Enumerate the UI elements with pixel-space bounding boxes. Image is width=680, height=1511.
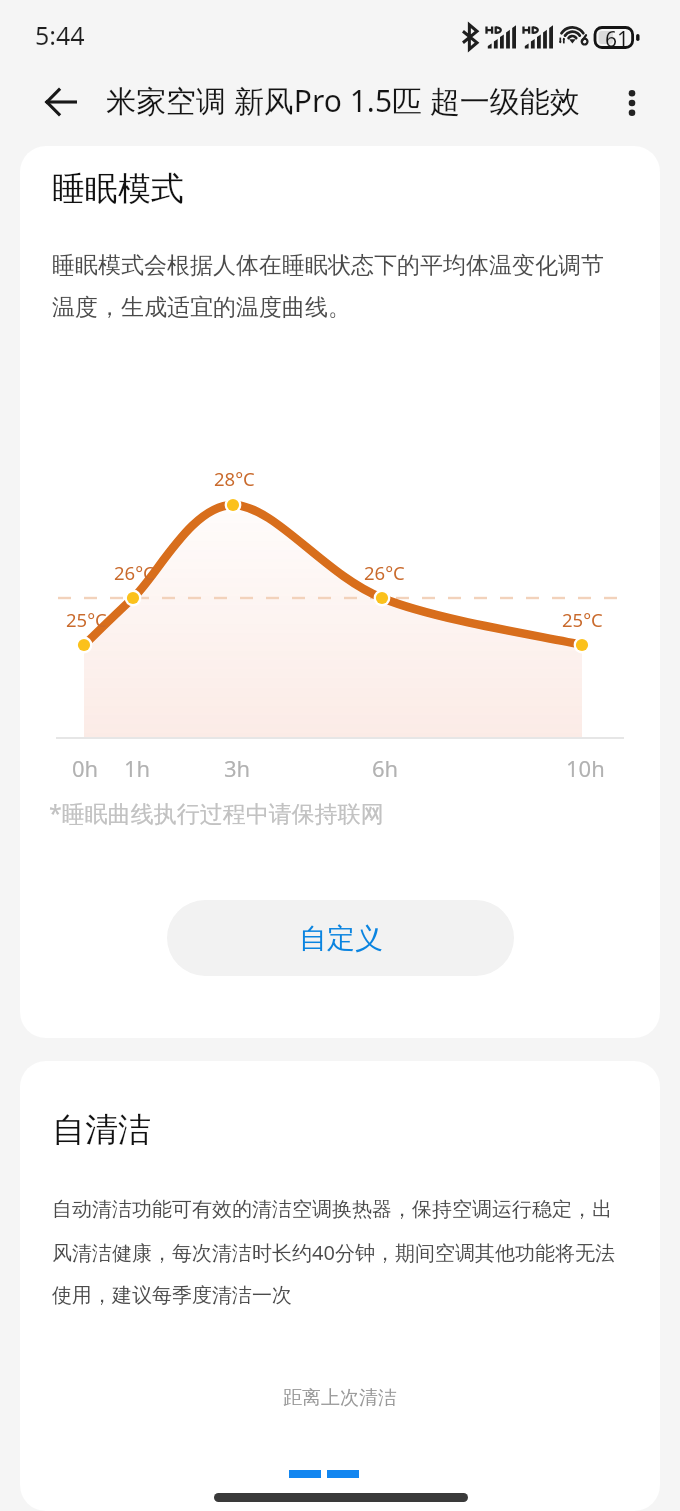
staticText: 5:44 [35, 18, 85, 52]
staticText: 3h [224, 753, 251, 783]
staticText: 28°C [214, 466, 255, 491]
staticText: 自清洁 [52, 1109, 151, 1151]
staticText: 26°C [364, 560, 405, 585]
button[interactable]: Back [33, 74, 89, 130]
staticText: 自定义 [299, 921, 383, 956]
staticText: 睡眠模式会根据人体在睡眠状态下的平均体温变化调节 温度，生成适宜的温度曲线。 [52, 251, 604, 322]
staticText: 61 [605, 25, 630, 54]
button[interactable]: 自定义 [167, 900, 514, 976]
staticText: 0h [72, 753, 99, 783]
staticText: 6h [372, 753, 399, 783]
staticText: 睡眠模式 [52, 168, 184, 210]
staticText: 自动清洁功能可有效的清洁空调换热器，保持空调运行稳定，出 风清洁健康，每次清洁时… [52, 1197, 615, 1308]
button[interactable]: More options [604, 75, 660, 131]
staticText: *睡眠曲线执行过程中请保持联网 [49, 797, 384, 828]
staticText: 26°C [114, 560, 155, 585]
staticText: 距离上次清洁 [20, 1386, 660, 1410]
staticText: 1h [124, 753, 151, 783]
staticText: 25°C [66, 607, 107, 632]
staticText: 10h [566, 753, 605, 783]
staticText: 米家空调 新风Pro 1.5匹 超一级能效 [106, 80, 580, 121]
staticText: 25°C [562, 607, 603, 632]
